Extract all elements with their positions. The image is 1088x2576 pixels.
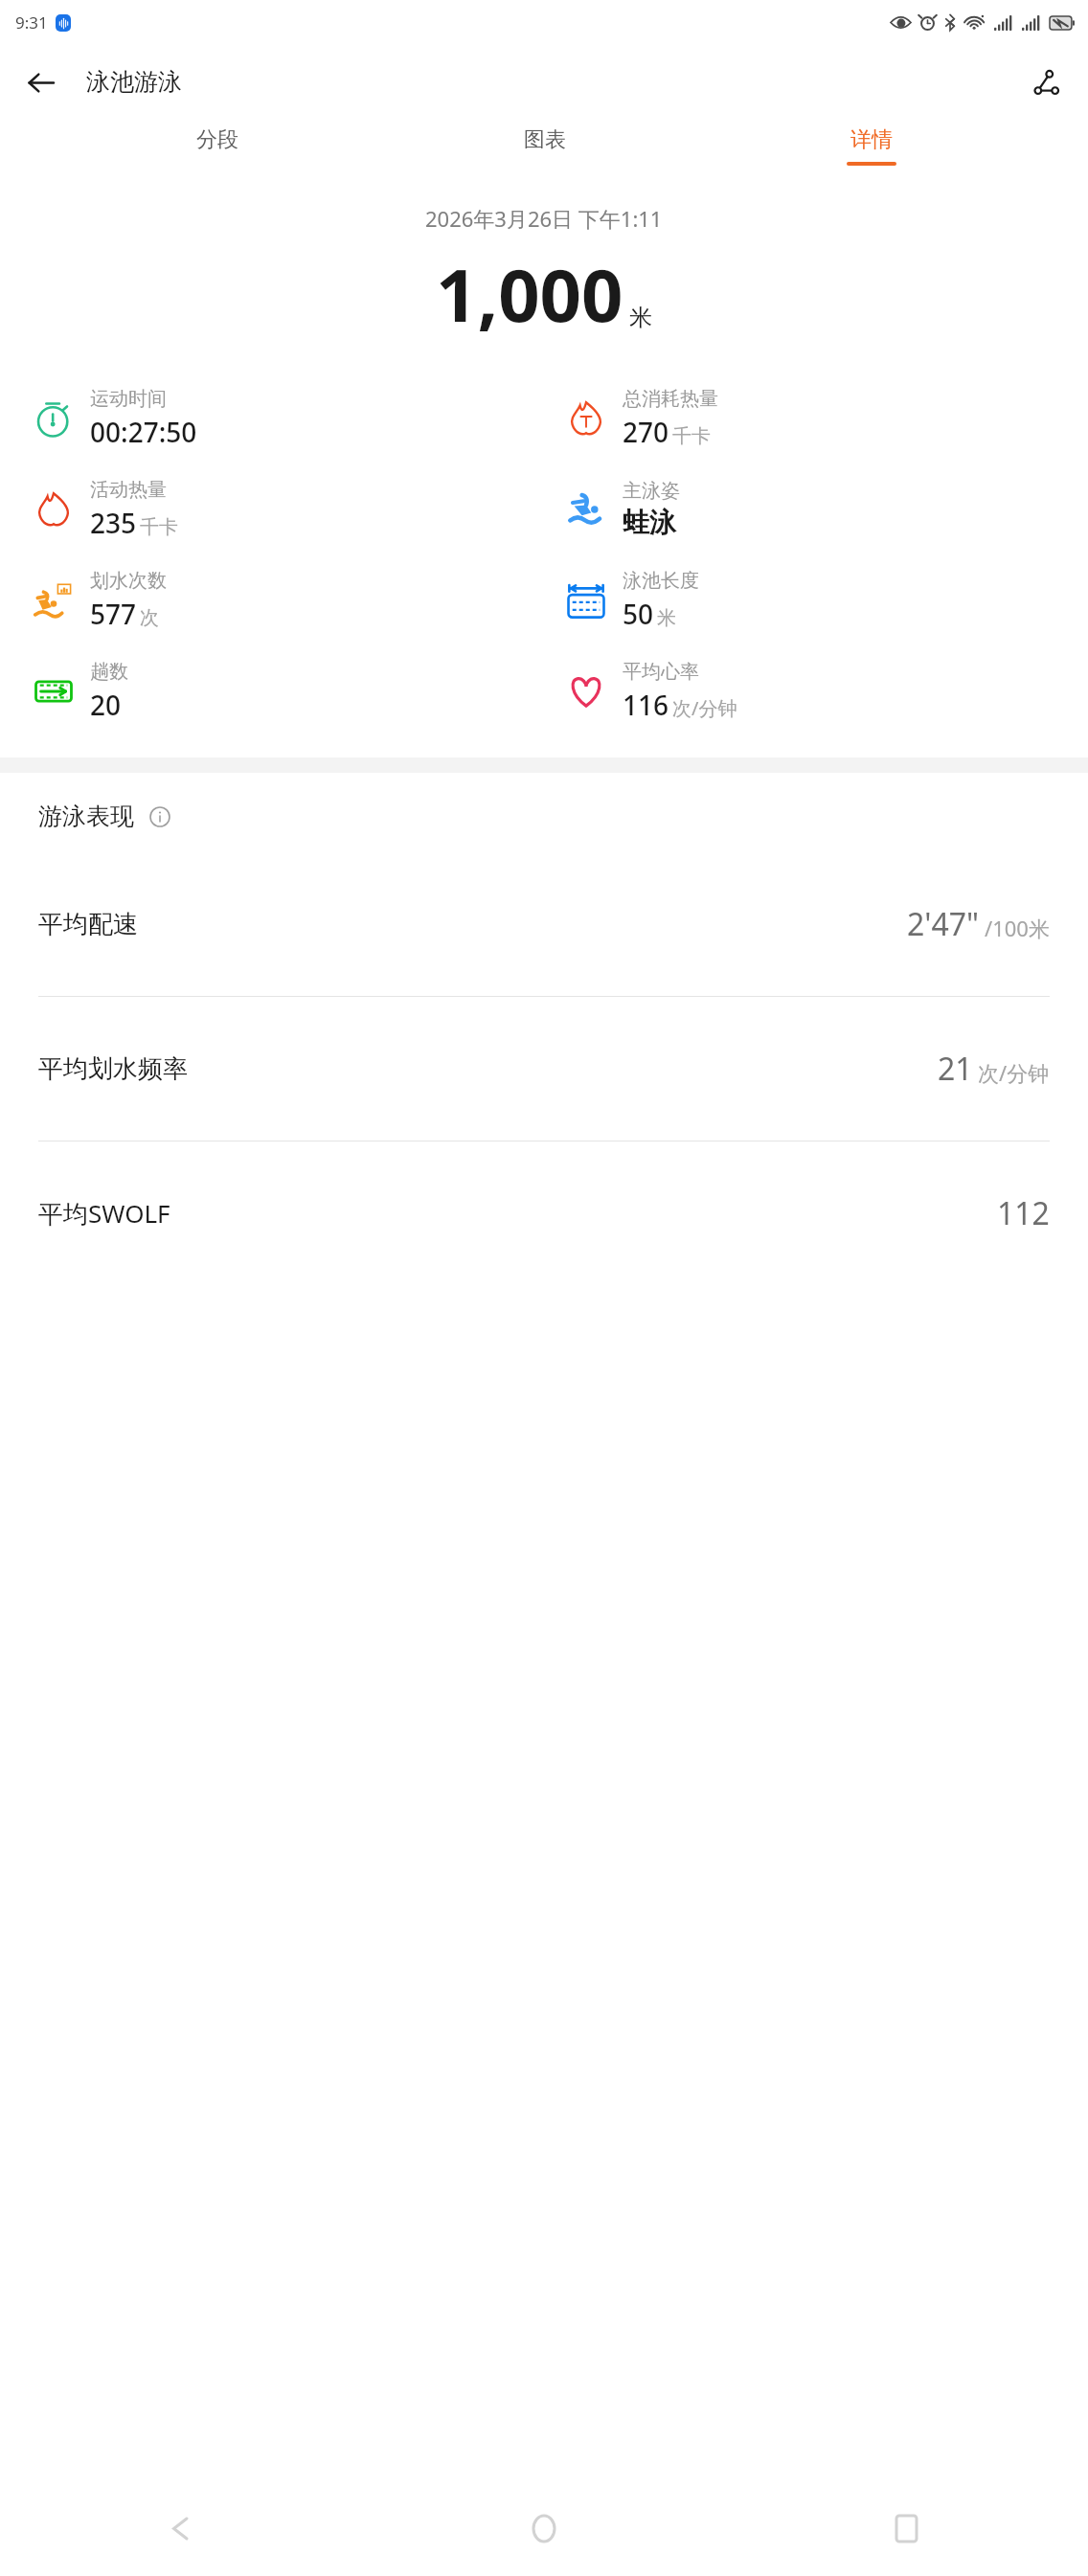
staticText: 米 [629,304,652,332]
staticText: 平均心率 [623,660,699,684]
staticText: 1,000 [436,244,623,344]
button[interactable]: 平均SWOLF [0,1141,1088,1285]
button[interactable]: 平均配速 [0,852,1088,996]
staticText: 详情 [850,126,893,153]
staticText: 游泳表现 [38,802,134,831]
staticText: 112 [997,1192,1050,1234]
staticText: 平均划水频率 [38,1053,188,1085]
staticText: 米 [657,606,676,630]
button[interactable]: 趟数 [29,645,544,736]
staticText: 21 [938,1048,973,1090]
staticText: 50 [623,596,654,632]
staticText: 平均SWOLF [38,1196,170,1231]
staticText: 分段 [196,126,238,153]
button[interactable]: 图表 [381,119,708,173]
button[interactable]: Recents [725,2480,1088,2576]
staticText: 00:27:50 [90,414,197,450]
staticText: 次/分钟 [978,1058,1050,1087]
button[interactable]: Share [1019,56,1073,109]
staticText: 泳池游泳 [86,67,182,97]
button[interactable]: 划水次数 [29,554,544,645]
staticText: 235 [90,505,137,541]
button[interactable]: 平均划水频率 [0,997,1088,1141]
staticText: 2026年3月26日 下午1:11 [425,204,663,233]
staticText: 平均配速 [38,909,138,940]
staticText: 趟数 [90,660,128,684]
staticText: 9:31 [15,11,48,34]
button[interactable]: 总消耗热量 [561,373,1088,463]
staticText: 活动热量 [90,478,167,502]
staticText: 图表 [524,126,566,153]
staticText: 20 [90,687,122,723]
button[interactable]: 平均心率 [561,645,1088,736]
button[interactable]: 泳池长度 [561,554,1088,645]
staticText: 次/分钟 [672,695,737,721]
button[interactable]: Info [146,802,174,831]
staticText: 总消耗热量 [623,387,718,411]
staticText: 千卡 [140,515,178,539]
staticText: /100米 [985,914,1050,942]
staticText: 主泳姿 [623,479,680,503]
staticText: 划水次数 [90,569,167,593]
button[interactable]: 主泳姿 [561,463,1088,554]
button[interactable]: Back [13,56,67,109]
staticText: 270 [623,414,669,450]
staticText: 蛙泳 [623,506,676,539]
staticText: 次 [140,606,159,630]
button[interactable]: 分段 [54,119,381,173]
button[interactable]: 详情 [708,119,1034,173]
staticText: 运动时间 [90,387,167,411]
staticText: 116 [623,687,669,723]
staticText: 2'47" [907,903,980,945]
staticText: 泳池长度 [623,569,699,593]
button[interactable]: 运动时间 [29,373,544,463]
button[interactable]: Home [362,2480,725,2576]
staticText: 577 [90,596,137,632]
staticText: 千卡 [672,424,711,448]
button[interactable]: 活动热量 [29,463,544,554]
